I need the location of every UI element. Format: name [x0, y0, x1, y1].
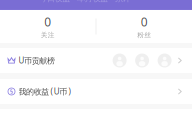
button[interactable]: U币贡献榜: [0, 48, 192, 73]
staticText: 我的收益 ( U币 ): [18, 86, 70, 97]
button[interactable]: 我的收益 ( U币 ): [0, 79, 192, 104]
staticText: 0: [44, 14, 51, 30]
staticText: 关注: [41, 31, 55, 39]
staticText: 粉丝: [137, 31, 151, 39]
staticText: 今日收益: [39, 0, 70, 4]
staticText: U币贡献榜: [18, 55, 55, 66]
staticText: 0: [141, 14, 148, 30]
staticText: 本月收益: [77, 0, 108, 4]
button[interactable]: 0: [96, 14, 192, 39]
staticText: 累计: [115, 0, 131, 4]
button[interactable]: 0: [0, 14, 95, 39]
